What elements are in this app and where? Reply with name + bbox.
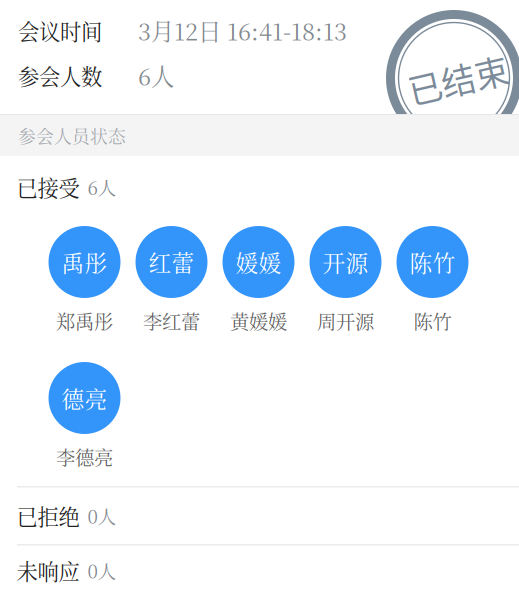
button[interactable]: 已拒绝 xyxy=(0,487,519,544)
staticText: 陈竹 xyxy=(413,307,451,335)
staticText: 禹彤 xyxy=(61,246,107,278)
staticText: 李红蕾 xyxy=(143,307,200,335)
staticText: 已拒绝 xyxy=(16,500,79,531)
staticText: 6人 xyxy=(87,174,116,200)
staticText: 陈竹 xyxy=(409,246,455,278)
staticText: 会议时间 xyxy=(18,15,102,46)
button[interactable]: 德亮 xyxy=(41,362,128,480)
staticText: 已结束 xyxy=(407,54,509,104)
staticText: 郑禹彤 xyxy=(56,307,113,335)
staticText: 开源 xyxy=(322,246,368,278)
staticText: 黄媛媛 xyxy=(230,307,287,335)
staticText: 媛媛 xyxy=(235,246,281,278)
staticText: 3月12日 16:41-18:13 xyxy=(138,14,347,47)
staticText: 参会人数 xyxy=(18,60,102,91)
button[interactable]: 红蕾 xyxy=(128,226,215,344)
button[interactable]: 未响应 xyxy=(0,545,519,595)
button[interactable]: 媛媛 xyxy=(215,226,302,344)
staticText: 0人 xyxy=(87,502,116,529)
button[interactable]: 开源 xyxy=(302,226,389,344)
staticText: 未响应 xyxy=(16,555,79,586)
button[interactable]: 已接受 xyxy=(0,156,519,218)
staticText: 6人 xyxy=(138,59,174,92)
button[interactable]: 禹彤 xyxy=(41,226,128,344)
staticText: 已接受 xyxy=(16,172,79,202)
staticText: 李德亮 xyxy=(56,443,113,471)
staticText: 红蕾 xyxy=(148,246,194,278)
button[interactable]: 陈竹 xyxy=(389,226,476,344)
staticText: 0人 xyxy=(87,557,116,584)
staticText: 德亮 xyxy=(61,382,107,414)
staticText: 参会人员状态 xyxy=(18,123,126,148)
staticText: 周开源 xyxy=(317,307,374,335)
